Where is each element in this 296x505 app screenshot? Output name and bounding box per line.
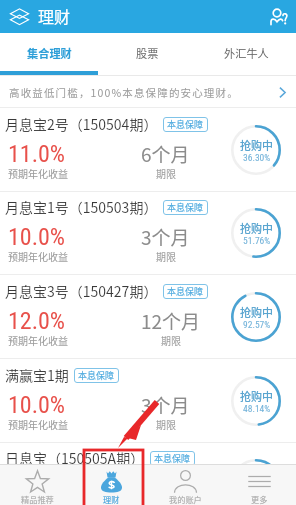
staticText: 期限: [161, 333, 181, 347]
staticText: 预期年化收益: [8, 500, 68, 505]
staticText: 外汇牛人: [224, 45, 269, 61]
staticText: 理财: [103, 493, 120, 505]
staticText: 月息宝1号（150503期）: [5, 197, 158, 217]
staticText: 本息保障: [167, 201, 204, 214]
button[interactable]: 外汇牛人: [197, 33, 296, 75]
button[interactable]: 我的账户: [148, 465, 222, 505]
button[interactable]: 日息宝（150505A期）: [0, 442, 296, 505]
button[interactable]: 月息宝1号（150503期）: [0, 191, 296, 275]
button[interactable]: 高收益低门槛，100%本息保障的安心理财。: [0, 76, 296, 108]
staticText: 满赢宝1期: [5, 365, 69, 385]
button[interactable]: 月息宝2号（150504期）: [0, 108, 296, 192]
staticText: 3个月: [141, 391, 190, 419]
staticText: 抢购中: [240, 388, 273, 404]
staticText: 11.0%: [8, 140, 66, 168]
staticText: 本息保障: [167, 285, 204, 298]
staticText: 本息保障: [78, 369, 115, 382]
staticText: 10.0%: [8, 391, 66, 419]
staticText: 抢购中: [240, 220, 273, 236]
staticText: 6个月: [141, 140, 190, 168]
staticText: 3个月: [141, 223, 190, 251]
button[interactable]: 更多: [222, 465, 296, 505]
button[interactable]: 精品推荐: [0, 465, 74, 505]
staticText: 预期年化收益: [8, 249, 68, 263]
staticText: 抢购中: [240, 304, 273, 320]
staticText: 51.76%: [243, 235, 271, 246]
button[interactable]: 理财: [74, 465, 148, 505]
staticText: 30.00%: [243, 486, 271, 497]
staticText: 11.0%: [8, 474, 66, 502]
staticText: 本息保障: [154, 452, 191, 465]
staticText: 48.14%: [243, 403, 271, 414]
staticText: 期限: [156, 166, 176, 180]
staticText: 月息宝3号（150427期）: [5, 281, 158, 301]
staticText: 预期年化收益: [8, 166, 68, 180]
staticText: 期限: [156, 500, 176, 505]
staticText: 预期年化收益: [8, 333, 68, 347]
button[interactable]: 股票: [98, 33, 197, 75]
staticText: 本息保障: [167, 118, 204, 131]
button[interactable]: 月息宝3号（150427期）: [0, 275, 296, 359]
staticText: 更多: [251, 493, 268, 505]
staticText: 36.30%: [243, 152, 271, 163]
staticText: 6个月: [141, 474, 190, 502]
staticText: 92.57%: [243, 319, 271, 330]
staticText: 精品推荐: [21, 493, 54, 505]
button[interactable]: 集合理财: [0, 33, 98, 75]
staticText: 股票: [136, 45, 159, 61]
staticText: 日息宝（150505A期）: [5, 448, 145, 468]
staticText: 抢购中: [240, 137, 273, 153]
button[interactable]: Customer service help: [269, 7, 289, 27]
staticText: 月息宝2号（150504期）: [5, 114, 158, 134]
staticText: 我的账户: [169, 493, 202, 505]
staticText: 高收益低门槛，100%本息保障的安心理财。: [9, 85, 239, 100]
staticText: 理财: [38, 4, 71, 27]
staticText: 12.0%: [8, 307, 66, 335]
staticText: 抢购中: [240, 471, 273, 487]
staticText: 10.0%: [8, 223, 66, 251]
staticText: 12个月: [141, 307, 201, 335]
button[interactable]: 满赢宝1期: [0, 359, 296, 443]
staticText: 预期年化收益: [8, 417, 68, 431]
staticText: 集合理财: [27, 45, 72, 61]
staticText: 期限: [156, 417, 176, 431]
staticText: 期限: [156, 249, 176, 263]
